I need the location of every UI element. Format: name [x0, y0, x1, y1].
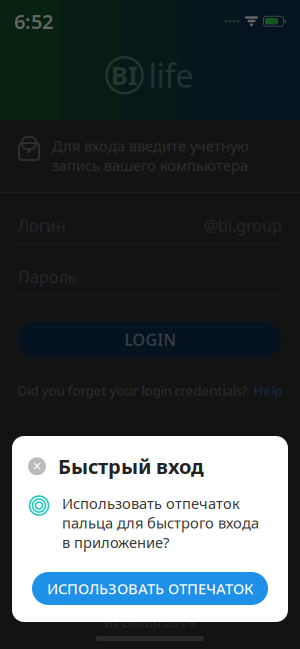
button[interactable]: Help — [247, 381, 282, 399]
staticText: Использовать отпечаток пальца для быстро… — [62, 494, 259, 552]
staticText: ИСПОЛЬЗОВАТЬ ОТПЕЧАТОК — [47, 579, 253, 598]
staticText: Help — [253, 381, 282, 399]
staticText: 6:52 — [14, 8, 53, 35]
staticText: LOGIN — [124, 329, 175, 350]
button[interactable]: Закрыть — [28, 457, 46, 475]
staticText: life — [148, 54, 193, 96]
staticText: Для входа введите учетную запись вашего … — [52, 136, 249, 175]
staticText: BI Group 2019 — [104, 613, 195, 631]
staticText: Быстрый вход — [58, 453, 204, 480]
button[interactable]: ИСПОЛЬЗОВАТЬ ОТПЕЧАТОК — [32, 572, 268, 605]
staticText: @bi.group — [204, 215, 282, 236]
staticText: BI — [111, 58, 138, 92]
staticText: Did you forget your login credentials? — [17, 381, 247, 399]
staticText: Логин — [18, 215, 66, 236]
staticText: ✕ — [32, 459, 42, 473]
button[interactable]: Логин — [0, 193, 300, 244]
button[interactable]: LOGIN — [18, 321, 282, 357]
staticText: Пароль — [18, 266, 77, 287]
